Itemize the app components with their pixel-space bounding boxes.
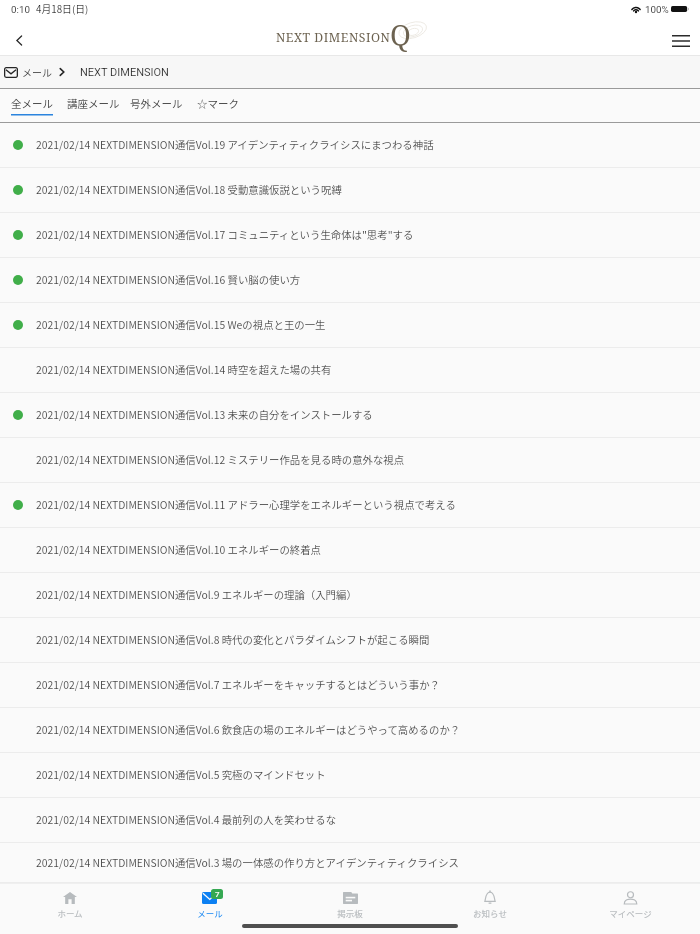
button[interactable]: 号外メール <box>130 89 183 122</box>
button[interactable]: 2021/02/14 NEXTDIMENSION通信Vol.19 アイデンティテ… <box>0 123 700 168</box>
staticText: 2021/02/14 NEXTDIMENSION通信Vol.18 受動意識仮説と… <box>36 182 342 197</box>
button[interactable]: ☆マーク <box>197 89 239 122</box>
button[interactable]: 2021/02/14 NEXTDIMENSION通信Vol.9 エネルギーの理論… <box>0 573 700 618</box>
button[interactable]: 2021/02/14 NEXTDIMENSION通信Vol.18 受動意識仮説と… <box>0 168 700 213</box>
button[interactable]: 2021/02/14 NEXTDIMENSION通信Vol.6 飲食店の場のエネ… <box>0 708 700 753</box>
button[interactable]: ホーム <box>0 884 140 934</box>
staticText: 2021/02/14 NEXTDIMENSION通信Vol.19 アイデンティテ… <box>36 137 434 152</box>
staticText: 2021/02/14 NEXTDIMENSION通信Vol.12 ミステリー作品… <box>36 452 405 467</box>
button[interactable]: 7 <box>140 884 280 934</box>
staticText: 0:10 <box>11 4 30 15</box>
staticText: メール <box>197 907 223 919</box>
staticText: 2021/02/14 NEXTDIMENSION通信Vol.11 アドラー心理学… <box>36 497 456 512</box>
button[interactable]: 2021/02/14 NEXTDIMENSION通信Vol.3 場の一体感の作り… <box>0 843 700 883</box>
staticText: 2021/02/14 NEXTDIMENSION通信Vol.14 時空を超えた場… <box>36 362 332 377</box>
staticText: 4月18日(日) <box>36 2 89 16</box>
button[interactable]: 2021/02/14 NEXTDIMENSION通信Vol.14 時空を超えた場… <box>0 348 700 393</box>
button[interactable]: お知らせ <box>420 884 560 934</box>
staticText: 2021/02/14 NEXTDIMENSION通信Vol.9 エネルギーの理論… <box>36 587 357 602</box>
button[interactable]: 2021/02/14 NEXTDIMENSION通信Vol.13 未来の自分をイ… <box>0 393 700 438</box>
staticText: ☆マーク <box>197 96 239 111</box>
button[interactable]: メール <box>4 56 52 88</box>
button[interactable]: 2021/02/14 NEXTDIMENSION通信Vol.16 賢い脳の使い方 <box>0 258 700 303</box>
staticText: マイページ <box>609 907 652 919</box>
button[interactable]: 2021/02/14 NEXTDIMENSION通信Vol.10 エネルギーの終… <box>0 528 700 573</box>
staticText: 2021/02/14 NEXTDIMENSION通信Vol.5 究極のマインドセ… <box>36 767 326 782</box>
staticText: 2021/02/14 NEXTDIMENSION通信Vol.17 コミュニティと… <box>36 227 414 242</box>
staticText: 2021/02/14 NEXTDIMENSION通信Vol.13 未来の自分をイ… <box>36 407 373 422</box>
button[interactable]: 2021/02/14 NEXTDIMENSION通信Vol.12 ミステリー作品… <box>0 438 700 483</box>
staticText: 講座メール <box>67 96 120 111</box>
staticText: ホーム <box>57 907 83 919</box>
button[interactable]: 2021/02/14 NEXTDIMENSION通信Vol.11 アドラー心理学… <box>0 483 700 528</box>
staticText: 2021/02/14 NEXTDIMENSION通信Vol.4 最前列の人を笑わ… <box>36 812 337 827</box>
staticText: 7 <box>215 890 220 899</box>
staticText: 2021/02/14 NEXTDIMENSION通信Vol.16 賢い脳の使い方 <box>36 272 301 287</box>
staticText: 100% <box>645 4 669 15</box>
staticText: NEXT DIMENSION <box>80 66 169 79</box>
button[interactable]: 2021/02/14 NEXTDIMENSION通信Vol.8 時代の変化とパラ… <box>0 618 700 663</box>
button[interactable]: 全メール <box>11 89 53 122</box>
staticText: メール <box>22 65 52 79</box>
staticText: 2021/02/14 NEXTDIMENSION通信Vol.3 場の一体感の作り… <box>36 855 459 870</box>
staticText: Q <box>390 15 411 53</box>
button[interactable]: 2021/02/14 NEXTDIMENSION通信Vol.5 究極のマインドセ… <box>0 753 700 798</box>
staticText: 2021/02/14 NEXTDIMENSION通信Vol.8 時代の変化とパラ… <box>36 632 430 647</box>
staticText: 号外メール <box>130 96 183 111</box>
button[interactable]: 講座メール <box>67 89 120 122</box>
staticText: 全メール <box>11 96 53 111</box>
staticText: 2021/02/14 NEXTDIMENSION通信Vol.10 エネルギーの終… <box>36 542 322 557</box>
staticText: NEXT DIMENSION <box>276 29 391 46</box>
button[interactable]: 2021/02/14 NEXTDIMENSION通信Vol.15 Weの視点と王… <box>0 303 700 348</box>
button[interactable]: メニュー <box>662 26 700 55</box>
staticText: 2021/02/14 NEXTDIMENSION通信Vol.7 エネルギーをキャ… <box>36 677 440 692</box>
staticText: お知らせ <box>473 907 507 919</box>
button[interactable]: マイページ <box>560 884 700 934</box>
button[interactable]: 掲示板 <box>280 884 420 934</box>
button[interactable]: 2021/02/14 NEXTDIMENSION通信Vol.4 最前列の人を笑わ… <box>0 798 700 843</box>
staticText: 2021/02/14 NEXTDIMENSION通信Vol.15 Weの視点と王… <box>36 317 326 332</box>
button[interactable]: 2021/02/14 NEXTDIMENSION通信Vol.7 エネルギーをキャ… <box>0 663 700 708</box>
button[interactable]: 戻る <box>0 26 38 55</box>
staticText: 2021/02/14 NEXTDIMENSION通信Vol.6 飲食店の場のエネ… <box>36 722 461 737</box>
staticText: 掲示板 <box>337 907 363 919</box>
button[interactable]: 2021/02/14 NEXTDIMENSION通信Vol.17 コミュニティと… <box>0 213 700 258</box>
